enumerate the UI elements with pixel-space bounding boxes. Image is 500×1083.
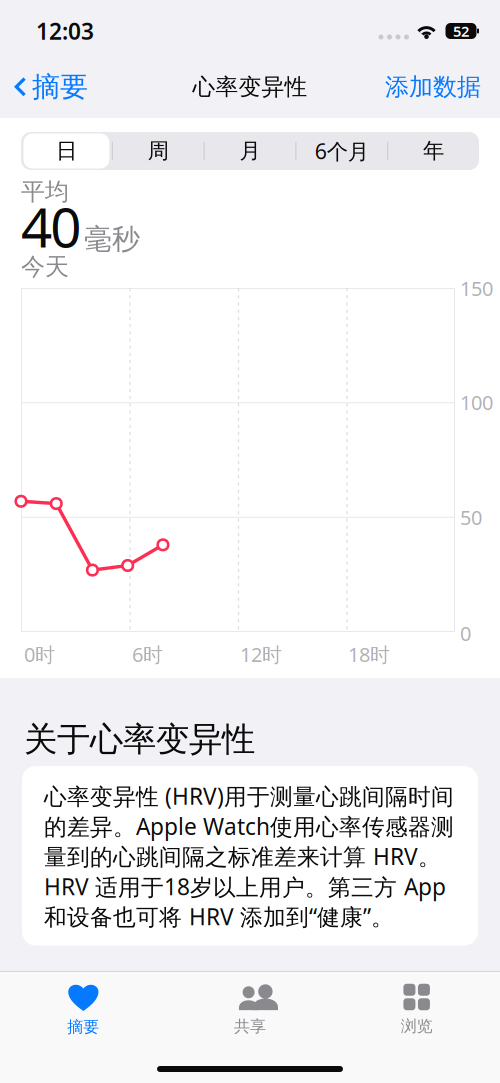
staticText: 摘要: [32, 70, 88, 104]
staticText: 年: [423, 138, 444, 164]
staticText: 毫秒: [84, 222, 140, 256]
button[interactable]: 年: [388, 132, 479, 170]
staticText: 0: [460, 620, 471, 647]
staticText: 日: [56, 138, 77, 164]
button[interactable]: 摘要: [0, 972, 167, 1037]
staticText: 6时: [132, 641, 163, 668]
button[interactable]: 浏览: [333, 973, 500, 1036]
staticText: 50: [460, 504, 482, 531]
button[interactable]: 周: [113, 132, 204, 170]
staticText: 6个月: [315, 137, 369, 165]
button[interactable]: 6个月: [296, 132, 387, 170]
staticText: 18时: [348, 641, 390, 668]
staticText: 共享: [234, 1016, 266, 1036]
staticText: 月: [239, 138, 260, 164]
staticText: 平均: [21, 177, 69, 206]
staticText: 今天: [21, 252, 69, 281]
button[interactable]: 共享: [167, 972, 333, 1036]
staticText: 150: [460, 275, 493, 302]
staticText: 心率变异性: [192, 73, 307, 101]
staticText: 添加数据: [385, 72, 481, 102]
button[interactable]: 月: [205, 132, 295, 170]
staticText: 周: [148, 138, 169, 164]
staticText: 100: [460, 389, 493, 416]
staticText: 摘要: [67, 1017, 99, 1037]
button[interactable]: 摘要: [0, 65, 98, 109]
staticText: 心率变异性 (HRV)用于测量心跳间隔时间的差异。Apple Watch使用心率…: [44, 781, 454, 932]
button[interactable]: 日: [21, 132, 112, 170]
staticText: 40: [21, 190, 81, 263]
staticText: 浏览: [401, 1016, 433, 1036]
staticText: 关于心率变异性: [24, 719, 255, 760]
staticText: 0时: [24, 641, 55, 668]
button[interactable]: 添加数据: [371, 65, 500, 109]
staticText: 52: [453, 21, 469, 41]
staticText: 12时: [240, 641, 282, 668]
staticText: 12:03: [36, 16, 94, 46]
